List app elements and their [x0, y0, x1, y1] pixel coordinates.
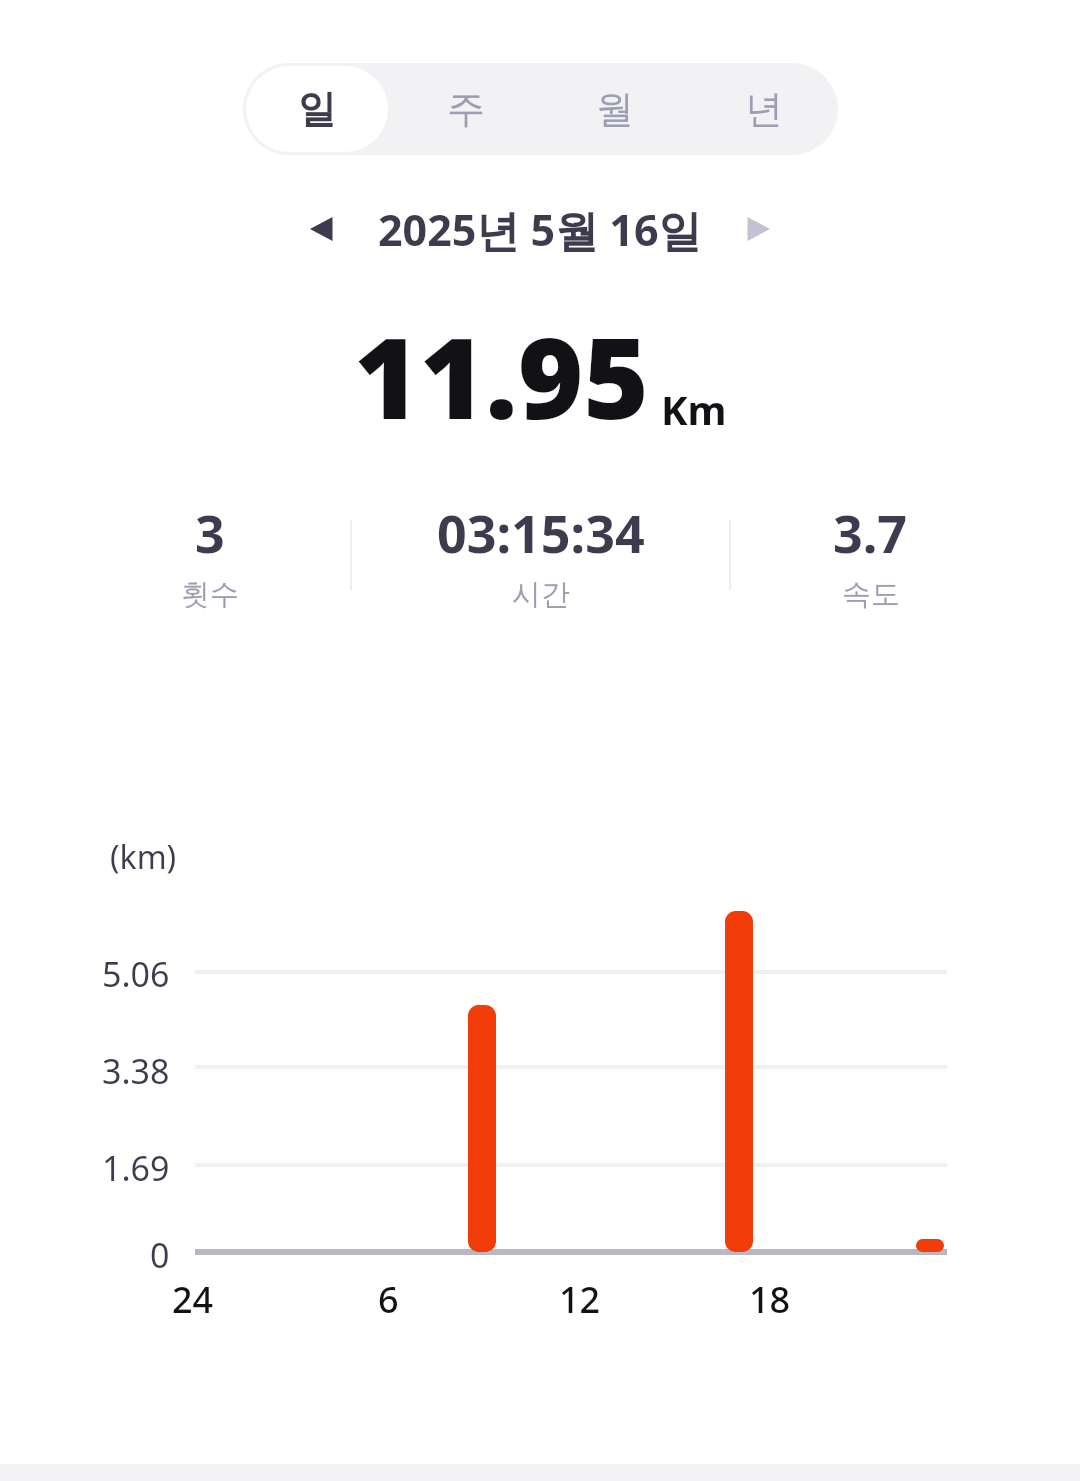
button[interactable]: Next day [726, 197, 790, 261]
staticText: 3.7 [833, 497, 908, 568]
button[interactable]: 일 [246, 66, 388, 152]
button[interactable]: Previous day [290, 197, 354, 261]
staticText: 24 [172, 1275, 214, 1324]
staticText: 일 [298, 85, 336, 133]
staticText: 2025년 5월 16일 [378, 200, 702, 259]
staticText: 6 [378, 1275, 399, 1324]
staticText: 시간 [512, 576, 570, 613]
staticText: 3 [195, 497, 225, 568]
staticText: 12 [559, 1275, 601, 1324]
staticText: 월 [596, 85, 634, 133]
staticText: 03:15:34 [437, 497, 645, 568]
staticText: 5.06 [102, 951, 170, 997]
button[interactable]: 월 [540, 63, 689, 155]
staticText: 주 [447, 85, 485, 133]
staticText: 18 [749, 1275, 791, 1324]
staticText: (km) [110, 835, 177, 879]
staticText: 1.69 [102, 1145, 170, 1191]
staticText: 0 [150, 1232, 170, 1278]
button[interactable]: 년 [689, 63, 838, 155]
staticText: 년 [745, 85, 783, 133]
staticText: 3.38 [102, 1048, 170, 1094]
button[interactable]: 3 [70, 497, 350, 613]
button[interactable]: 03:15:34 [352, 497, 729, 613]
staticText: 속도 [842, 576, 900, 613]
button[interactable]: 주 [391, 63, 540, 155]
staticText: 11.95 [354, 299, 649, 452]
staticText: Km [661, 382, 727, 436]
button[interactable]: 3.7 [731, 497, 1010, 613]
staticText: 횟수 [181, 576, 239, 613]
